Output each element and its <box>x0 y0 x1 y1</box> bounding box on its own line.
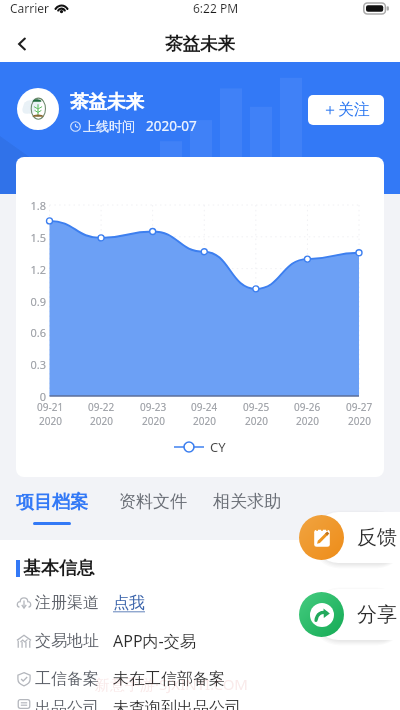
button[interactable]: 相关求助 <box>209 478 285 523</box>
staticText: 基本信息 <box>23 557 95 580</box>
staticText: 09-27 <box>346 400 373 414</box>
staticText: 09-24 <box>191 400 218 414</box>
button[interactable]: Back <box>8 30 36 58</box>
staticText: 点我 <box>113 593 145 613</box>
staticText: 1.5 <box>16 230 46 245</box>
staticText: 茶益未来 <box>165 33 235 55</box>
button[interactable]: 资料文件 <box>115 478 191 523</box>
button[interactable]: 项目档案 <box>12 478 92 525</box>
button[interactable]: 反馈 <box>299 515 344 560</box>
staticText: 2020 <box>142 414 165 428</box>
staticText: 未在工信部备案 <box>113 669 225 689</box>
staticText: 新意手游·SJXINYI.COM <box>95 674 248 694</box>
staticText: 交易地址 <box>35 631 99 651</box>
button[interactable]: 分享 <box>299 592 344 637</box>
staticText: 反馈 <box>357 525 397 550</box>
staticText: ＋关注 <box>322 100 370 120</box>
staticText: 2020 <box>39 414 62 428</box>
staticText: 09-22 <box>88 400 115 414</box>
staticText: 09-26 <box>294 400 321 414</box>
staticText: 0.6 <box>16 325 46 340</box>
staticText: Carrier <box>10 0 50 16</box>
staticText: 2020 <box>296 414 319 428</box>
staticText: 2020 <box>348 414 371 428</box>
staticText: 0.9 <box>16 294 46 309</box>
staticText: 1.8 <box>16 198 46 213</box>
staticText: 0.3 <box>16 357 46 372</box>
staticText: 工信备案 <box>35 669 99 689</box>
staticText: 6:22 PM <box>193 0 239 16</box>
staticText: 09-23 <box>140 400 167 414</box>
staticText: 09-21 <box>37 400 64 414</box>
staticText: 1.2 <box>16 262 46 277</box>
staticText: 项目档案 <box>16 491 88 514</box>
staticText: 2020 <box>193 414 216 428</box>
staticText: 2020-07 <box>146 117 197 135</box>
button[interactable]: 反馈 <box>313 512 400 563</box>
staticText: 注册渠道 <box>35 593 99 613</box>
staticText: 0 <box>16 389 46 404</box>
button[interactable]: ＋关注 <box>308 95 384 125</box>
staticText: 资料文件 <box>119 491 187 512</box>
staticText: 09-25 <box>243 400 270 414</box>
button[interactable]: 出品公司 <box>16 698 400 710</box>
staticText: 出品公司 <box>35 698 99 710</box>
staticText: 未查询到出品公司 <box>113 698 241 710</box>
button[interactable]: 交易地址 <box>16 622 400 660</box>
staticText: 分享 <box>357 602 397 627</box>
button[interactable]: 工信备案 <box>16 660 400 698</box>
staticText: APP内-交易 <box>113 630 196 652</box>
button[interactable]: 分享 <box>313 589 400 640</box>
button[interactable]: 注册渠道 <box>16 584 400 622</box>
staticText: 相关求助 <box>213 491 281 512</box>
staticText: CY <box>210 438 226 456</box>
staticText: 2020 <box>90 414 113 428</box>
staticText: 茶益未来 <box>70 90 144 113</box>
staticText: 上线时间 <box>83 118 135 134</box>
staticText: 2020 <box>245 414 268 428</box>
